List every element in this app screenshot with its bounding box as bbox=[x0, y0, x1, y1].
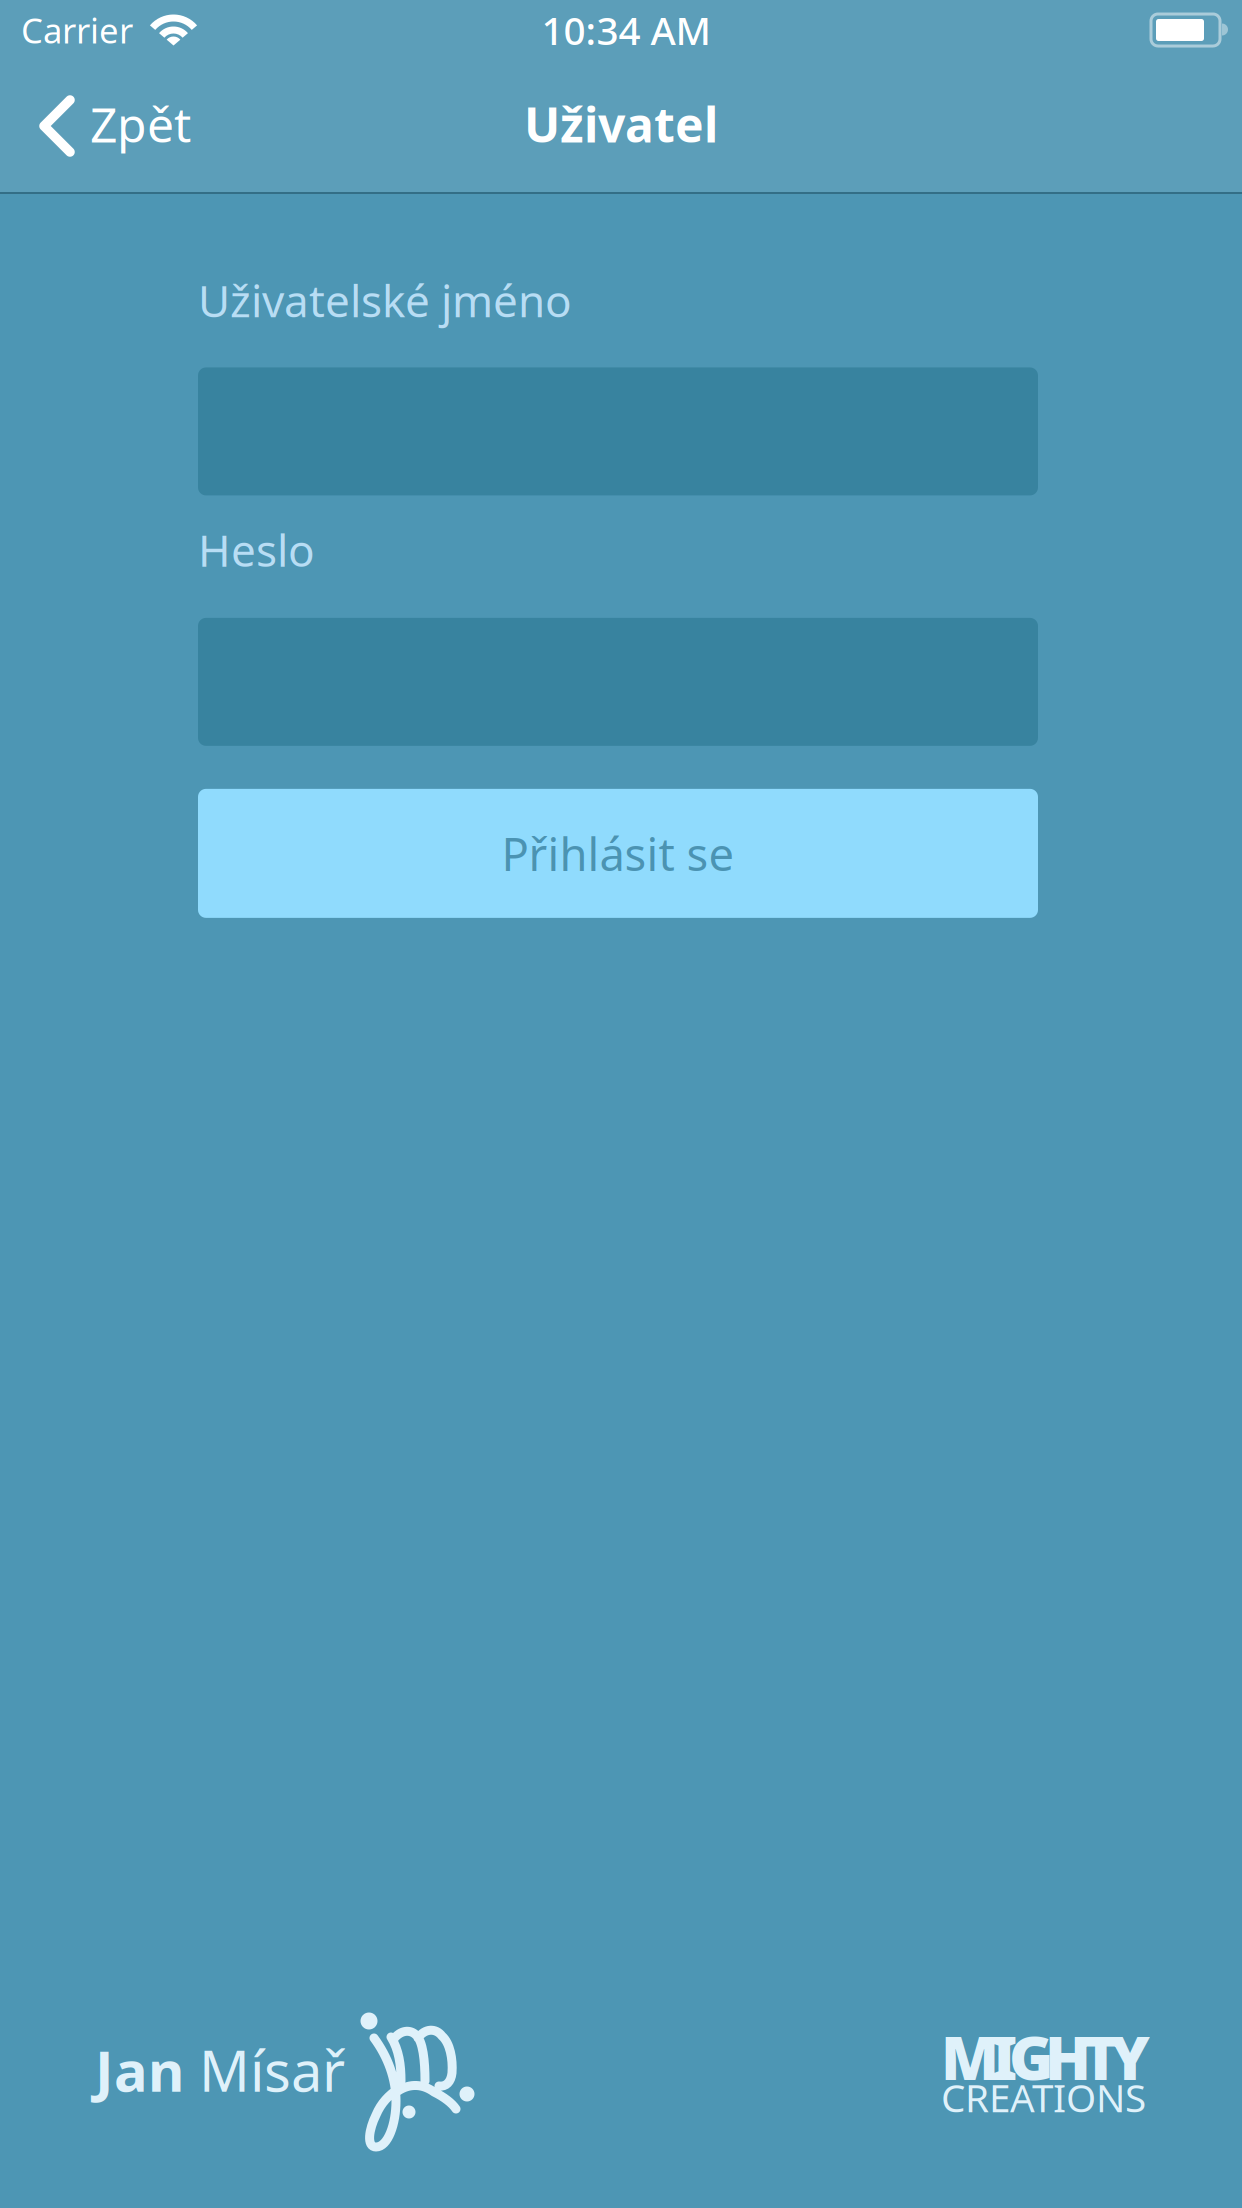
staticText: 10:34 AM bbox=[541, 4, 710, 56]
button[interactable]: Přihlásit se bbox=[198, 789, 1038, 918]
staticText: Přihlásit se bbox=[501, 823, 734, 883]
staticText: Zpět bbox=[90, 92, 191, 156]
staticText: Carrier bbox=[21, 7, 133, 53]
staticText: CREATIONS bbox=[941, 2072, 1146, 2123]
staticText: MIGHTY bbox=[941, 2017, 1150, 2097]
button[interactable]: Zpět bbox=[0, 58, 215, 190]
staticText: Heslo bbox=[198, 520, 315, 579]
staticText: Jan bbox=[95, 2033, 199, 2107]
staticText: Uživatelské jméno bbox=[198, 271, 572, 329]
staticText: Uživatel bbox=[524, 92, 718, 156]
staticText: Mísař bbox=[199, 2033, 345, 2107]
